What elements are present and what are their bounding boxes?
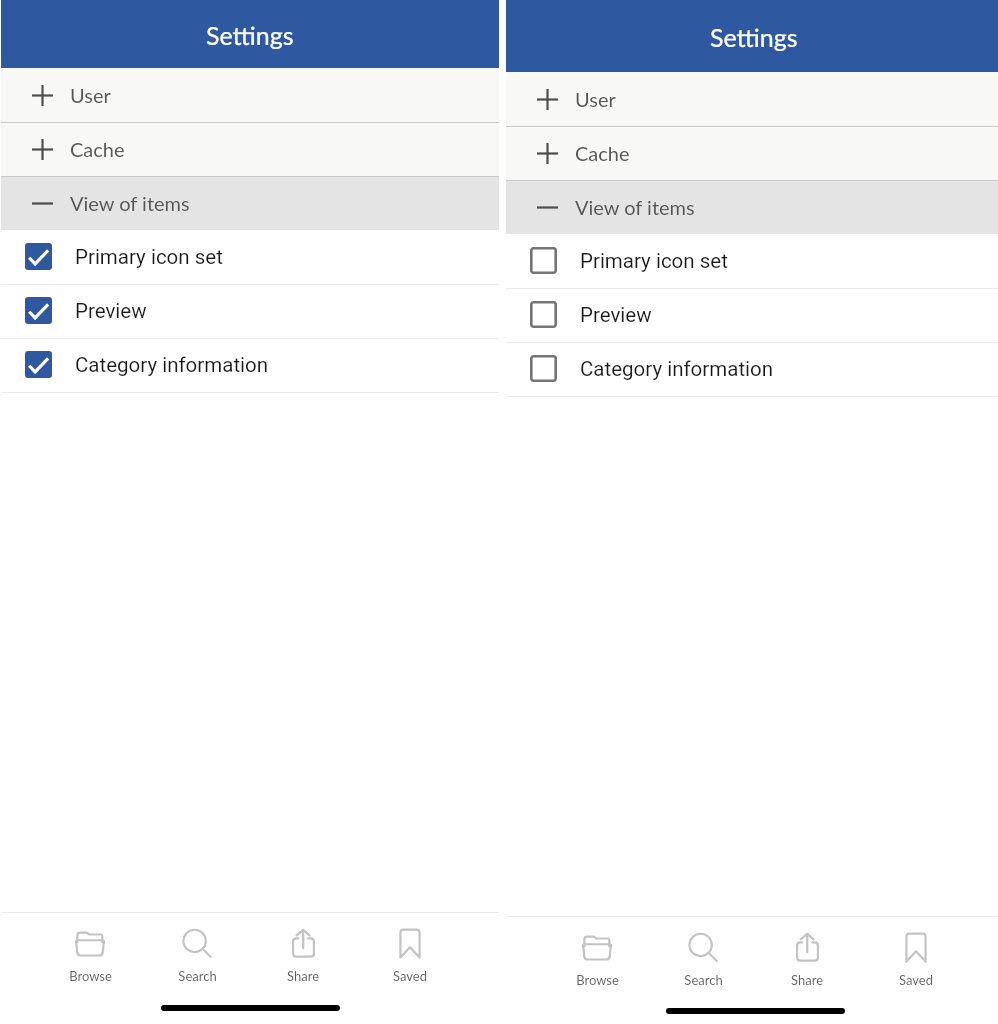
button[interactable]: User	[506, 72, 998, 126]
other: Share	[292, 928, 315, 957]
staticText: Saved	[899, 972, 933, 988]
other: Browse	[74, 931, 106, 957]
button[interactable]: View of items	[1, 176, 499, 230]
other: Share	[796, 932, 819, 961]
button[interactable]: Primary icon set	[506, 234, 998, 288]
staticText: View of items	[575, 195, 695, 219]
staticText: Cache	[575, 141, 630, 165]
button[interactable]: User	[1, 68, 499, 122]
staticText: Settings	[710, 22, 798, 52]
button[interactable]: Search	[664, 931, 742, 988]
staticText: Share	[791, 972, 823, 988]
staticText: User	[575, 87, 616, 111]
staticText: Preview	[75, 299, 147, 323]
button[interactable]: View of items	[506, 180, 998, 234]
other: Search	[183, 929, 211, 957]
staticText: Browse	[69, 968, 112, 984]
other: Browse	[581, 935, 613, 961]
staticText: Search	[178, 968, 217, 984]
other: Saved	[905, 931, 927, 961]
button[interactable]: Primary icon set	[1, 230, 499, 284]
staticText: Category information	[75, 353, 269, 377]
button[interactable]: Share	[264, 927, 342, 984]
staticText: Saved	[393, 968, 427, 984]
staticText: Primary icon set	[580, 249, 728, 273]
staticText: Browse	[576, 972, 619, 988]
staticText: Settings	[206, 20, 294, 50]
button[interactable]: Saved	[877, 931, 955, 988]
button[interactable]: Cache	[506, 126, 998, 180]
button[interactable]: Share	[768, 931, 846, 988]
staticText: Primary icon set	[75, 245, 223, 269]
other: Search	[689, 933, 717, 961]
button[interactable]: Preview	[506, 288, 998, 342]
other: Saved	[399, 927, 421, 957]
button[interactable]: Search	[158, 927, 236, 984]
button[interactable]: Saved	[371, 927, 449, 984]
staticText: Cache	[70, 137, 125, 161]
staticText: Search	[684, 972, 723, 988]
button[interactable]: Cache	[1, 122, 499, 176]
button[interactable]: Browse	[51, 927, 129, 984]
button[interactable]: Category information	[506, 342, 998, 396]
staticText: Share	[287, 968, 319, 984]
staticText: Preview	[580, 303, 652, 327]
staticText: Category information	[580, 357, 774, 381]
button[interactable]: Browse	[558, 931, 636, 988]
button[interactable]: Preview	[1, 284, 499, 338]
staticText: User	[70, 83, 111, 107]
button[interactable]: Category information	[1, 338, 499, 392]
staticText: View of items	[70, 191, 190, 215]
